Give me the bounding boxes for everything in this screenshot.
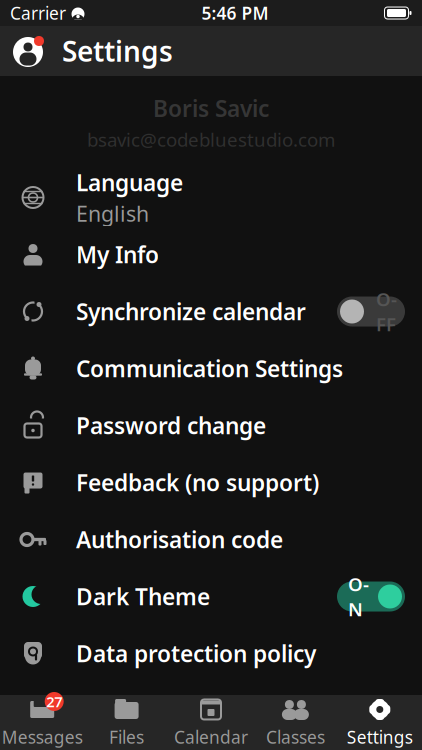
- button[interactable]: 27: [0, 695, 84, 750]
- staticText: Carrier: [10, 1, 66, 24]
- staticText: Classes: [266, 725, 325, 748]
- button[interactable]: Synchronize calendar: [0, 283, 422, 340]
- staticText: OFF: [376, 287, 397, 336]
- button[interactable]: Classes: [253, 695, 338, 750]
- button[interactable]: Language: [0, 169, 422, 226]
- button[interactable]: Profile: [12, 34, 46, 68]
- button[interactable]: Files: [84, 695, 169, 750]
- staticText: English: [76, 199, 149, 228]
- staticText: Synchronize calendar: [76, 296, 306, 326]
- staticText: My Info: [76, 239, 159, 269]
- button[interactable]: Calendar: [169, 695, 253, 750]
- button[interactable]: Feedback (no support): [0, 454, 422, 511]
- button[interactable]: Authorisation code: [0, 511, 422, 568]
- staticText: Settings: [347, 725, 413, 748]
- button[interactable]: Password change: [0, 397, 422, 454]
- button[interactable]: Dark Theme: [0, 568, 422, 625]
- staticText: Calendar: [174, 725, 248, 748]
- staticText: Settings: [62, 32, 173, 70]
- staticText: Language: [76, 167, 183, 197]
- staticText: Dark Theme: [76, 581, 210, 611]
- staticText: Feedback (no support): [76, 467, 319, 497]
- staticText: Password change: [76, 410, 266, 440]
- staticText: Data protection policy: [76, 638, 316, 668]
- staticText: bsavic@codebluestudio.com: [87, 127, 335, 152]
- staticText: Boris Savic: [153, 93, 269, 123]
- staticText: Files: [109, 725, 144, 748]
- button[interactable]: Settings: [338, 695, 422, 750]
- staticText: Messages: [2, 725, 83, 748]
- staticText: Communication Settings: [76, 353, 343, 383]
- staticText: 27: [46, 692, 62, 711]
- staticText: ON: [348, 572, 369, 621]
- staticText: 5:46 PM: [201, 1, 268, 24]
- button[interactable]: Communication Settings: [0, 340, 422, 397]
- button[interactable]: Data protection policy: [0, 625, 422, 682]
- staticText: Authorisation code: [76, 524, 283, 554]
- button[interactable]: My Info: [0, 226, 422, 283]
